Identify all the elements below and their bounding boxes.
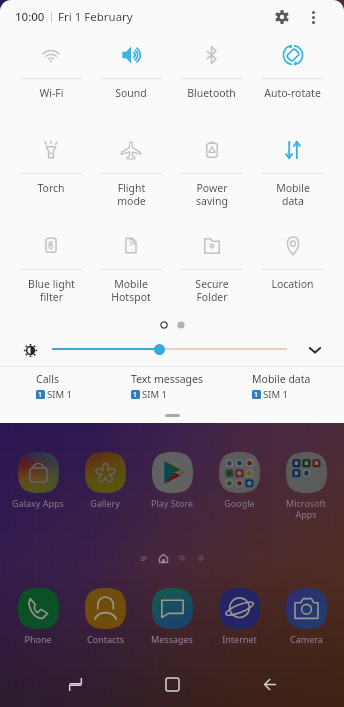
staticText: 1 [254,390,259,399]
button[interactable]: Bluetooth [171,34,252,129]
button[interactable]: Phone [6,588,70,645]
staticText: Auto-rotate [264,86,321,100]
button[interactable]: Calls [36,372,72,401]
staticText: Mobile Hotspot [111,277,151,304]
staticText: Wi-Fi [39,86,64,100]
staticText: Camera [290,633,323,645]
button[interactable]: Sound [91,34,171,129]
staticText: Galaxy Apps [12,497,64,509]
staticText: SIM 1 [47,388,72,401]
button[interactable]: Galaxy Apps [6,452,70,509]
staticText: Fri 1 February [58,9,133,25]
button[interactable]: Back [247,662,291,706]
staticText: Bluetooth [187,86,236,100]
button[interactable]: Google [207,452,271,509]
button[interactable]: Contacts [73,588,137,645]
staticText: 10:00 [15,9,45,25]
button[interactable]: Secure Folder [171,225,252,321]
staticText: Play Store [151,497,193,509]
staticText: Mobile data [252,372,311,386]
button[interactable]: Microsoft Apps [274,452,338,520]
button[interactable]: Location [252,225,333,321]
button[interactable]: Blue light filter [11,225,91,321]
staticText: Google [224,497,255,509]
button[interactable]: Home [150,662,194,706]
button[interactable]: Messages [140,588,204,645]
button[interactable]: Internet [207,588,271,645]
staticText: Blue light filter [28,277,75,304]
staticText: Torch [37,181,65,195]
button[interactable]: Mobile data [252,372,311,401]
button[interactable]: Auto-rotate [252,34,333,129]
staticText: Location [271,277,314,291]
button[interactable]: Mobile data [252,129,333,225]
staticText: Flight mode [117,181,146,208]
staticText: Contacts [87,633,124,645]
button[interactable]: Text messages [131,372,203,401]
staticText: 1 [38,390,43,399]
staticText: Calls [36,372,59,386]
button[interactable]: Recents [53,662,97,706]
button[interactable]: Power saving [171,129,252,225]
staticText: Microsoft Apps [286,497,326,520]
button[interactable]: Play Store [140,452,204,509]
staticText: 1 [133,390,138,399]
button[interactable]: Gallery [73,452,137,509]
button[interactable]: Expand quick settings [302,337,328,363]
staticText: Text messages [131,372,203,386]
staticText: Power saving [196,181,228,208]
staticText: Internet [222,633,257,645]
staticText: SIM 1 [142,388,167,401]
staticText: Phone [24,633,52,645]
button[interactable]: Torch [11,129,91,225]
staticText: Mobile data [276,181,310,208]
staticText: Messages [151,633,193,645]
button[interactable]: More options [300,4,326,30]
staticText: Gallery [90,497,120,509]
button[interactable]: Camera [274,588,338,645]
staticText: Sound [115,86,147,100]
button[interactable]: Settings [268,3,296,31]
staticText: SIM 1 [263,388,288,401]
button[interactable]: Flight mode [91,129,171,225]
button[interactable]: Wi-Fi [11,34,91,129]
staticText: Secure Folder [195,277,229,304]
button[interactable]: Mobile Hotspot [91,225,171,321]
